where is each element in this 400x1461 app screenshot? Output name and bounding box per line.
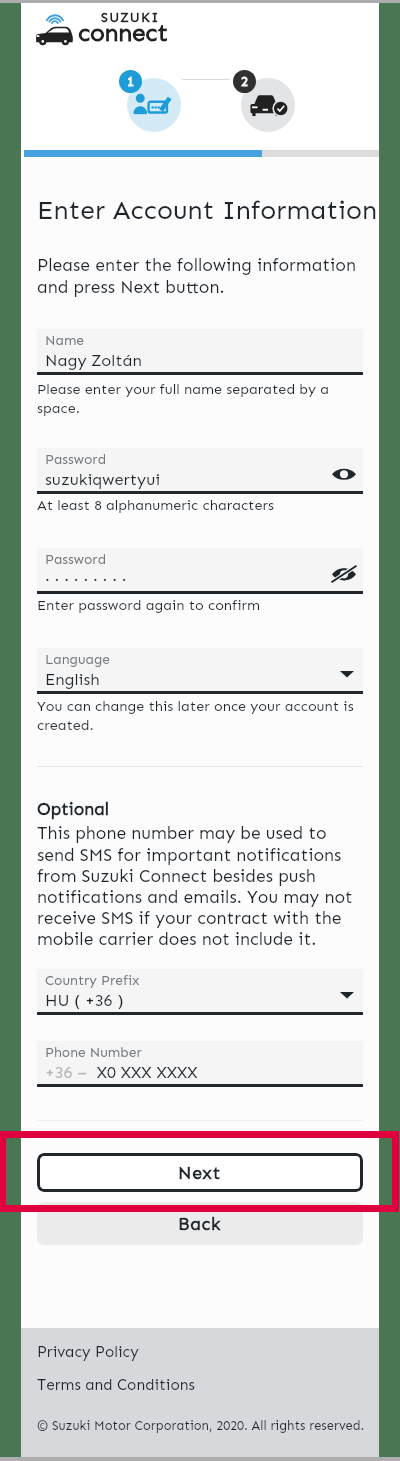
- staticText: +36 –: [45, 1063, 92, 1083]
- staticText: This phone number may be used to send SM…: [37, 823, 359, 949]
- other: Hide password: [331, 565, 357, 583]
- staticText: Phone Number: [45, 1044, 142, 1061]
- other: Show password: [331, 466, 357, 482]
- staticText: Back: [178, 1213, 222, 1234]
- staticText: 1: [127, 74, 134, 90]
- staticText: Please enter the following information a…: [37, 255, 367, 297]
- staticText: Enter Account Information: [37, 194, 378, 226]
- button[interactable]: Language: [37, 648, 363, 694]
- button[interactable]: Name: [37, 329, 363, 375]
- staticText: Privacy Policy: [37, 1343, 139, 1361]
- staticText: Optional: [37, 799, 110, 820]
- staticText: Terms and Conditions: [37, 1376, 195, 1394]
- button[interactable]: Next: [37, 1153, 363, 1192]
- staticText: Password: [45, 451, 107, 468]
- staticText: Name: [45, 332, 85, 349]
- staticText: Country Prefix: [45, 972, 140, 989]
- staticText: At least 8 alphanumeric characters: [37, 496, 359, 513]
- staticText: English: [45, 670, 100, 690]
- staticText: connect: [78, 18, 168, 47]
- staticText: Language: [45, 651, 110, 668]
- other: Open dropdown: [340, 990, 354, 1000]
- staticText: suzukiqwertyui: [45, 470, 161, 490]
- staticText: Enter password again to confirm: [37, 596, 359, 613]
- staticText: X0 XXX XXXX: [92, 1063, 198, 1083]
- other: Open dropdown: [340, 669, 354, 679]
- button[interactable]: Phone Number: [37, 1041, 363, 1087]
- button[interactable]: Password: [37, 448, 363, 494]
- staticText: HU ( +36 ): [45, 991, 124, 1011]
- staticText: © Suzuki Motor Corporation, 2020. All ri…: [37, 1418, 365, 1434]
- staticText: Nagy Zoltán: [45, 351, 142, 371]
- staticText: Please enter your full name separated by…: [37, 380, 359, 416]
- staticText: SUZUKI: [101, 9, 160, 25]
- staticText: Password: [45, 551, 107, 568]
- button[interactable]: Terms and Conditions: [21, 1369, 379, 1401]
- button[interactable]: Password: [37, 548, 363, 594]
- staticText: 2: [241, 74, 248, 90]
- staticText: You can change this later once your acco…: [37, 697, 359, 733]
- button[interactable]: Back: [37, 1202, 363, 1245]
- button[interactable]: Privacy Policy: [21, 1336, 379, 1368]
- staticText: · · · · · · · · ·: [45, 570, 127, 590]
- staticText: Next: [178, 1162, 222, 1183]
- button[interactable]: Country Prefix: [37, 969, 363, 1015]
